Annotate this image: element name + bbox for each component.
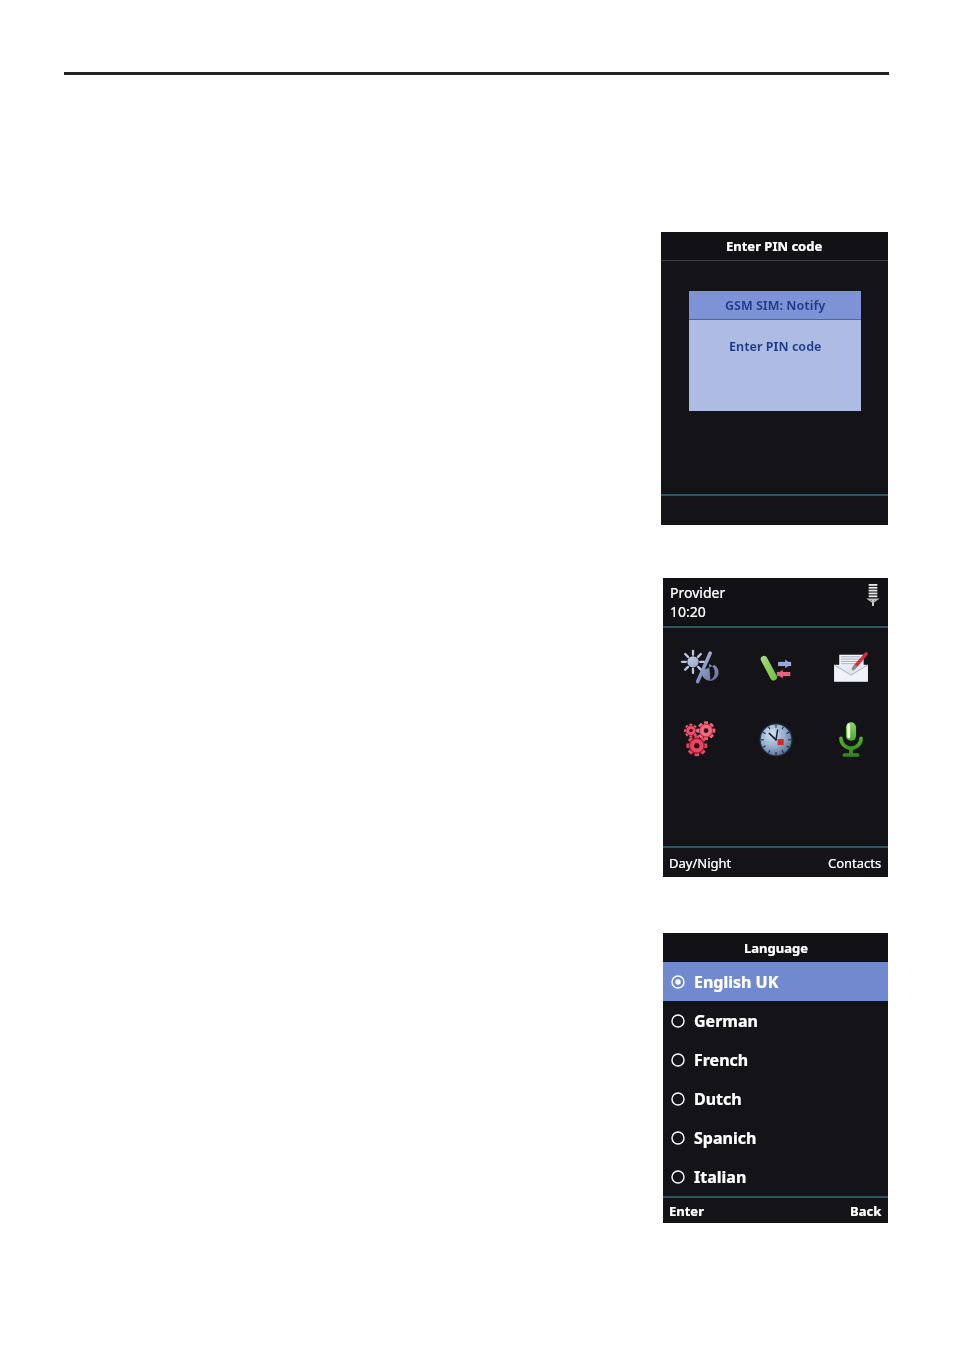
button[interactable]: Enter [663,1198,775,1223]
staticText: Dutch [694,1088,742,1110]
button[interactable]: Day/Night [663,848,775,877]
button[interactable]: Contacts [775,848,888,877]
button[interactable]: Call log [738,634,813,704]
button[interactable]: Settings [663,704,738,774]
staticText: Italian [694,1166,747,1188]
button[interactable]: Voice [813,704,888,774]
staticText: English UK [694,971,779,993]
staticText: GSM SIM: Notify [725,297,826,314]
button[interactable]: German [663,1001,888,1040]
staticText: German [694,1010,758,1032]
button[interactable]: Day/Night mode [663,634,738,704]
button[interactable]: French [663,1040,888,1079]
staticText: Enter PIN code [729,338,822,355]
button[interactable]: Clock [738,704,813,774]
staticText: Enter [669,1202,704,1220]
staticText: 10:20 [670,602,706,621]
staticText: Provider [670,583,726,602]
button[interactable]: Italian [663,1157,888,1196]
other: Signal strength [866,584,880,614]
staticText: Enter PIN code [726,237,823,255]
staticText: Contacts [828,854,882,872]
staticText: French [694,1049,749,1071]
staticText: Back [850,1202,882,1220]
button[interactable]: Messages [813,634,888,704]
button[interactable]: GSM SIM: Notify [689,291,861,411]
button[interactable]: English UK [663,962,888,1001]
button[interactable]: Dutch [663,1079,888,1118]
staticText: Spanich [694,1127,757,1149]
button[interactable]: Spanich [663,1118,888,1157]
button[interactable]: Back [775,1198,888,1223]
staticText: Language [744,939,808,957]
staticText: Day/Night [669,854,732,872]
